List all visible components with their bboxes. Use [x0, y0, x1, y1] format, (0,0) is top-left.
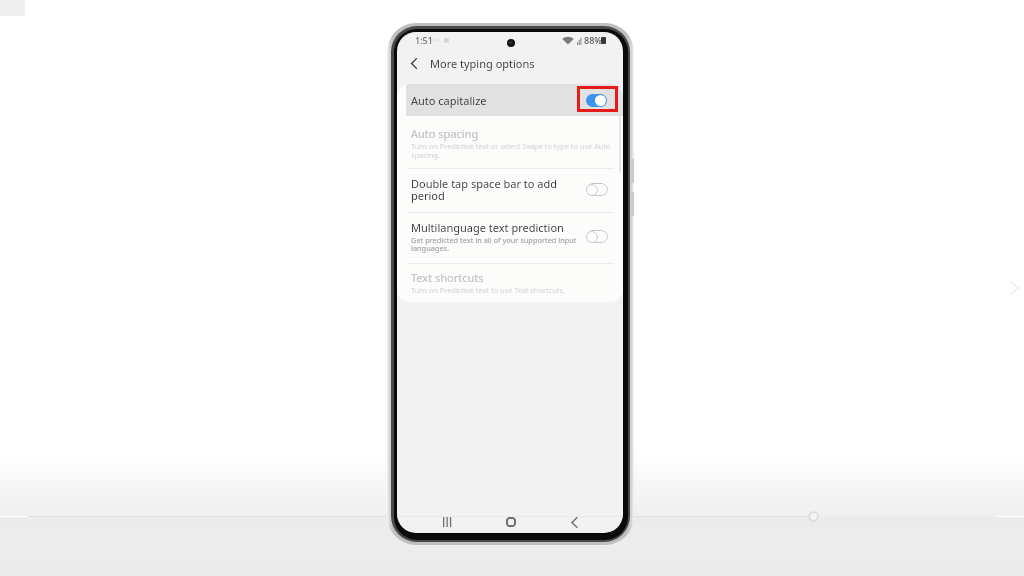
staticText: Auto spacing — [411, 126, 531, 141]
button[interactable]: Toggle off — [586, 230, 608, 243]
staticText: languages. — [411, 243, 471, 253]
button[interactable]: Text shortcuts — [397, 263, 623, 302]
staticText: 88% — [584, 34, 610, 46]
staticText: Turn on Predictive text or select Swipe … — [411, 141, 616, 151]
staticText: Text shortcuts — [411, 270, 531, 285]
button[interactable]: Auto capitalize — [397, 84, 623, 116]
staticText: period — [411, 188, 471, 203]
staticText: 1:51 — [415, 34, 445, 46]
button[interactable]: Navigate back — [403, 52, 425, 74]
staticText: Multilanguage text prediction — [411, 220, 586, 235]
button[interactable]: Home — [497, 511, 525, 533]
staticText: Double tap space bar to add — [411, 176, 576, 191]
staticText: More typing options — [430, 56, 600, 71]
staticText: Turn on Predictive text to use Text shor… — [411, 285, 586, 295]
staticText: spacing. — [411, 150, 471, 160]
button[interactable]: Auto capitalize, on — [586, 94, 607, 107]
button[interactable]: Toggle off — [586, 183, 608, 196]
button[interactable]: Back — [560, 511, 588, 533]
staticText: Get predicted text in all of your suppor… — [411, 235, 586, 245]
button[interactable]: Multilanguage text prediction — [397, 212, 623, 262]
button[interactable]: Recent apps — [433, 511, 461, 533]
button[interactable]: Double tap space bar to add — [397, 168, 623, 212]
button[interactable]: Auto spacing — [397, 116, 623, 168]
staticText: Auto capitalize — [411, 93, 531, 108]
